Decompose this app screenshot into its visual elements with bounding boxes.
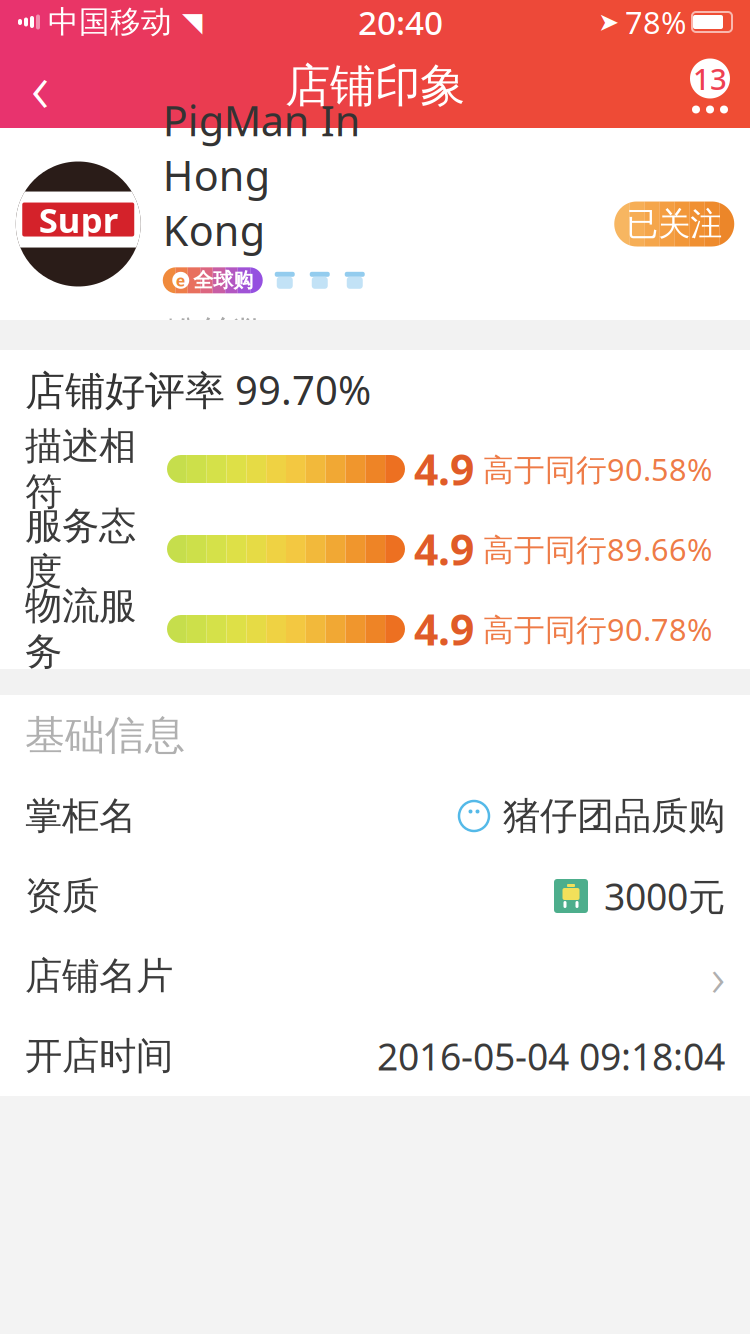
- staticText: ◥: [182, 7, 203, 37]
- staticText: ‹: [31, 40, 49, 132]
- staticText: 粉丝数1086: [163, 309, 348, 355]
- staticText: 中国移动: [48, 3, 172, 41]
- staticText: 店铺好评率 99.70%: [25, 363, 371, 416]
- staticText: 掌柜名: [25, 793, 136, 839]
- button[interactable]: 已关注: [614, 201, 734, 246]
- staticText: PigMan In Hong Kong: [163, 93, 361, 257]
- staticText: e: [176, 270, 186, 291]
- staticText: 基础信息: [25, 711, 185, 760]
- staticText: 服务态度: [25, 503, 136, 595]
- staticText: 2016-05-04 09:18:04: [377, 1031, 725, 1081]
- staticText: 资质: [25, 873, 99, 919]
- staticText: 4.9: [414, 441, 474, 497]
- staticText: 4.9: [414, 521, 474, 577]
- staticText: 店铺印象: [285, 58, 465, 114]
- staticText: 高于同行90.78%: [483, 609, 712, 649]
- staticText: 已关注: [626, 204, 722, 244]
- staticText: 高于同行90.58%: [483, 449, 712, 489]
- staticText: 物流服务: [25, 583, 136, 675]
- staticText: ➤: [598, 8, 619, 36]
- staticText: 高于同行89.66%: [483, 529, 712, 569]
- staticText: 4.9: [414, 601, 474, 657]
- staticText: 店铺名片: [25, 953, 173, 999]
- button[interactable]: More options, 13 notifications: [670, 44, 750, 128]
- staticText: 全球购: [193, 268, 253, 293]
- button[interactable]: 店铺名片: [0, 936, 750, 1016]
- staticText: 3000元: [604, 871, 725, 921]
- button[interactable]: Back: [0, 44, 80, 128]
- staticText: ›: [711, 941, 725, 1011]
- staticText: Supr: [39, 196, 118, 242]
- staticText: 13: [693, 59, 727, 98]
- staticText: 开店时间: [25, 1033, 173, 1079]
- staticText: 猪仔团品质购: [503, 793, 725, 839]
- staticText: 描述相符: [25, 423, 136, 515]
- staticText: 20:40: [358, 0, 443, 44]
- staticText: 78%: [625, 2, 686, 42]
